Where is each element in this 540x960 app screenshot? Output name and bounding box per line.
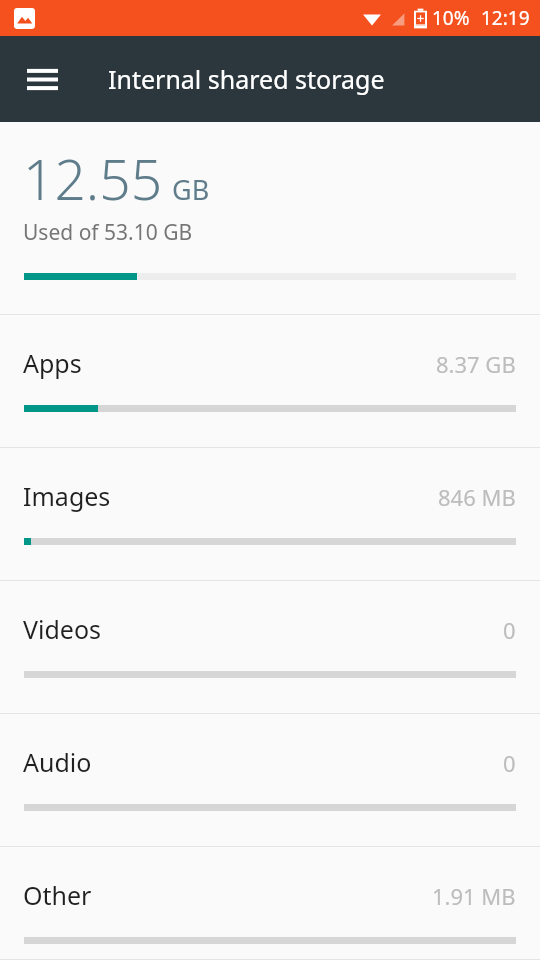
staticText: Videos — [23, 612, 102, 646]
staticText: 0 — [503, 748, 516, 778]
staticText: Audio — [23, 745, 92, 779]
button[interactable]: Open navigation menu — [14, 51, 70, 107]
staticText: Used of 53.10 GB — [23, 218, 193, 247]
staticText: 12:19 — [481, 5, 530, 31]
staticText: 10% — [432, 5, 470, 31]
button[interactable]: Videos — [0, 581, 540, 714]
staticText: Internal shared storage — [108, 62, 385, 96]
staticText: Other — [23, 878, 92, 912]
staticText: 8.37 GB — [436, 349, 516, 379]
staticText: 1.91 MB — [432, 881, 516, 911]
button[interactable]: Other — [0, 847, 540, 960]
button[interactable]: Apps — [0, 315, 540, 448]
staticText: 846 MB — [438, 482, 516, 512]
button[interactable]: Images — [0, 448, 540, 581]
staticText: Images — [23, 479, 111, 513]
staticText: 12.55 — [23, 141, 163, 216]
staticText: 0 — [503, 615, 516, 645]
staticText: GB — [172, 171, 210, 208]
staticText: Apps — [23, 346, 82, 380]
button[interactable]: Audio — [0, 714, 540, 847]
